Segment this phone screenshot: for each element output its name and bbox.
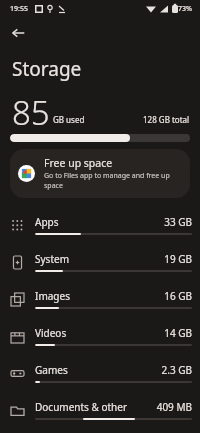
- button[interactable]: Free up space: [10, 149, 190, 198]
- staticText: Go to Files app to manage and free up sp…: [44, 171, 180, 191]
- button[interactable]: Images: [0, 281, 200, 318]
- staticText: 16 GB: [164, 289, 192, 303]
- staticText: 409 MB: [156, 400, 192, 414]
- staticText: 2.3 GB: [161, 363, 192, 377]
- staticText: 85: [12, 90, 50, 128]
- staticText: Images: [35, 289, 164, 303]
- staticText: 73%: [178, 4, 192, 14]
- button[interactable]: Videos: [0, 318, 200, 355]
- button[interactable]: Back: [5, 20, 31, 46]
- staticText: 14 GB: [164, 326, 192, 340]
- button[interactable]: System: [0, 244, 200, 281]
- button[interactable]: Games: [0, 355, 200, 392]
- staticText: System: [35, 252, 164, 266]
- staticText: Games: [35, 363, 161, 377]
- staticText: 19:55: [10, 4, 28, 14]
- staticText: Apps: [35, 215, 164, 229]
- staticText: Storage: [12, 56, 82, 82]
- staticText: 19 GB: [164, 252, 192, 266]
- staticText: Free up space: [44, 156, 113, 170]
- staticText: 33 GB: [164, 215, 192, 229]
- staticText: GB used: [53, 114, 85, 125]
- staticText: Videos: [35, 326, 164, 340]
- staticText: Documents & other: [35, 400, 156, 414]
- staticText: 128 GB total: [143, 114, 190, 125]
- button[interactable]: Apps: [0, 207, 200, 244]
- button[interactable]: Documents & other: [0, 392, 200, 429]
